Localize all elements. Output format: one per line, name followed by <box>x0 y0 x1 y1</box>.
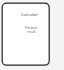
staticText: Printout <box>25 26 37 30</box>
button[interactable]: Curriculum <box>0 13 61 17</box>
staticText: Curriculum <box>21 13 38 17</box>
staticText: result <box>27 30 36 34</box>
